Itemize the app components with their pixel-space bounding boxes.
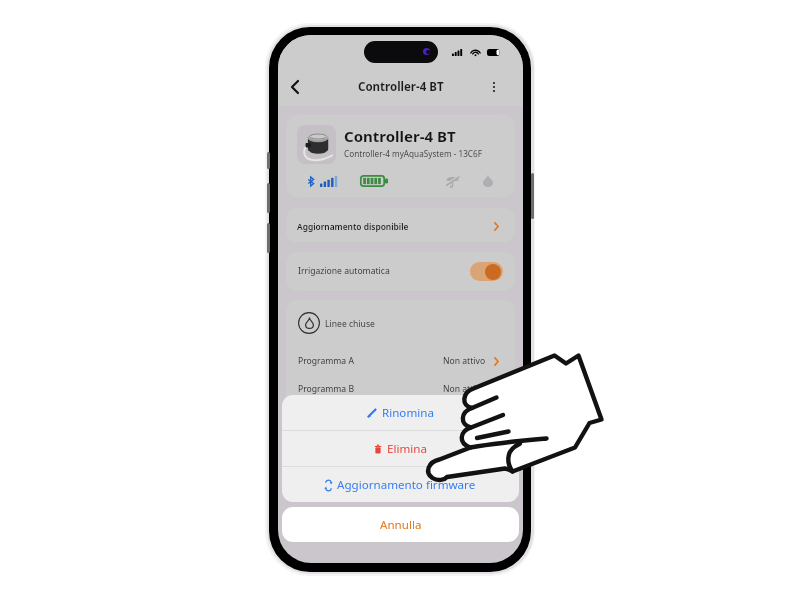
- staticText: Controller-4 myAquaSystem - 13C6F: [344, 148, 482, 159]
- staticText: Rinomina: [382, 405, 434, 421]
- staticText: Programma B: [298, 383, 354, 395]
- staticText: Non attivo: [443, 355, 486, 367]
- staticText: Aggiornamento firmware: [337, 477, 476, 493]
- staticText: Irrigazione automatica: [298, 265, 390, 277]
- staticText: Programma A: [298, 355, 354, 367]
- button[interactable]: Controller-4 BT: [286, 115, 515, 197]
- staticText: Annulla: [380, 517, 422, 533]
- button[interactable]: More options: [483, 76, 505, 98]
- button[interactable]: Rinomina: [282, 395, 519, 430]
- button[interactable]: Aggiornamento firmware: [282, 467, 519, 502]
- button[interactable]: Programma B: [286, 382, 515, 396]
- button[interactable]: [470, 262, 503, 281]
- staticText: Linee chiuse: [325, 318, 375, 330]
- button[interactable]: Back: [283, 75, 307, 99]
- staticText: Controller-4 BT: [358, 79, 444, 95]
- staticText: Elimina: [387, 441, 427, 457]
- button[interactable]: Irrigazione automatica: [286, 252, 515, 291]
- button[interactable]: Annulla: [282, 507, 519, 542]
- staticText: Aggiornamento disponibile: [297, 221, 409, 232]
- button[interactable]: Aggiornamento disponibile: [286, 208, 515, 242]
- staticText: Controller-4 BT: [344, 126, 456, 146]
- button[interactable]: Elimina: [282, 431, 519, 466]
- staticText: Non attivo: [443, 383, 486, 395]
- button[interactable]: Programma A: [286, 354, 515, 368]
